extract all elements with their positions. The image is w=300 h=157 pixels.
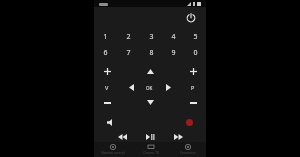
staticText: 3 bbox=[149, 32, 154, 42]
button[interactable]: Channel down bbox=[180, 95, 206, 110]
button[interactable]: Play pause bbox=[136, 132, 164, 142]
button[interactable]: V bbox=[94, 79, 120, 95]
staticText: 6 bbox=[103, 48, 108, 58]
button[interactable]: Down bbox=[120, 95, 180, 110]
button[interactable]: P bbox=[180, 79, 206, 95]
button[interactable]: Channel up bbox=[180, 64, 206, 79]
button[interactable]: Remote control bbox=[94, 142, 132, 157]
staticText: 8 bbox=[149, 48, 154, 58]
staticText: V bbox=[105, 84, 109, 91]
button[interactable]: Volume up bbox=[94, 64, 120, 79]
button[interactable]: Volume down bbox=[94, 95, 120, 110]
button[interactable]: Mute bbox=[94, 113, 128, 132]
staticText: 4 bbox=[171, 32, 176, 42]
staticText: 5 bbox=[193, 32, 198, 42]
staticText: Favourites bbox=[180, 151, 196, 155]
button[interactable]: Record bbox=[172, 113, 206, 132]
button[interactable]: 7 bbox=[117, 45, 140, 61]
staticText: 9 bbox=[171, 48, 176, 58]
button[interactable]: 0 bbox=[184, 45, 206, 61]
staticText: 1 bbox=[103, 32, 108, 42]
staticText: Remote control bbox=[101, 151, 125, 155]
button[interactable]: Favourites bbox=[169, 142, 206, 157]
staticText: 0 bbox=[193, 48, 198, 58]
staticText: OK bbox=[146, 85, 153, 91]
button[interactable]: 2 bbox=[117, 29, 140, 45]
button[interactable]: Choose TV bbox=[132, 142, 169, 157]
button[interactable]: 9 bbox=[162, 45, 184, 61]
button[interactable]: Rewind bbox=[108, 132, 136, 142]
button[interactable]: 6 bbox=[94, 45, 117, 61]
button[interactable]: 8 bbox=[140, 45, 162, 61]
button[interactable]: 4 bbox=[162, 29, 184, 45]
staticText: 7 bbox=[126, 48, 131, 58]
staticText: Choose TV bbox=[143, 151, 159, 155]
button[interactable]: Power bbox=[184, 11, 198, 25]
staticText: P bbox=[191, 84, 195, 91]
button[interactable]: Fast forward bbox=[164, 132, 192, 142]
staticText: 2 bbox=[126, 32, 131, 42]
button[interactable]: Right bbox=[156, 79, 180, 95]
button[interactable]: 3 bbox=[140, 29, 162, 45]
button[interactable]: Left bbox=[120, 79, 143, 95]
button[interactable]: 5 bbox=[184, 29, 206, 45]
button[interactable]: OK bbox=[143, 81, 156, 94]
button[interactable]: Up bbox=[120, 64, 180, 79]
button[interactable]: 1 bbox=[94, 29, 117, 45]
